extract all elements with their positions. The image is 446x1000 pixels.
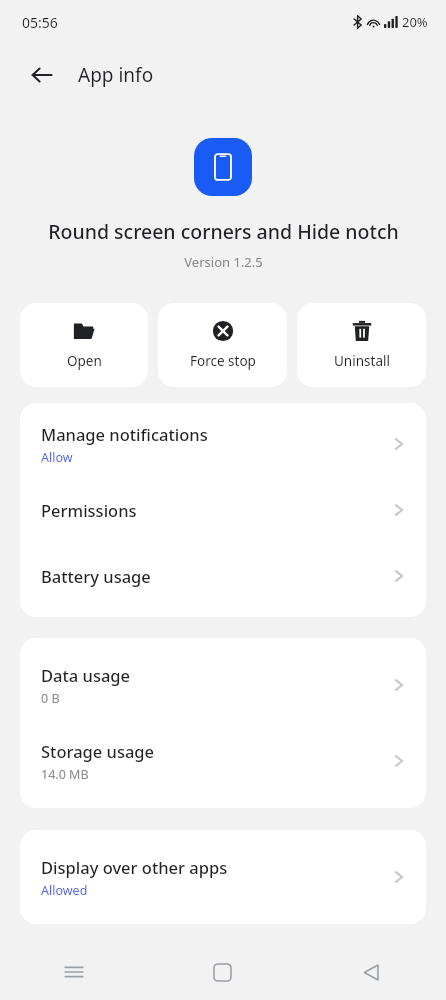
staticText: App info xyxy=(78,62,154,88)
staticText: Battery usage xyxy=(41,565,151,587)
button[interactable]: Force stop xyxy=(158,303,287,387)
button[interactable]: Open xyxy=(20,303,148,387)
staticText: 14.0 MB xyxy=(41,766,89,783)
staticText: Uninstall xyxy=(334,352,390,370)
staticText: Permissions xyxy=(41,499,137,521)
button[interactable]: Manage notifications xyxy=(20,411,426,477)
button[interactable]: Storage usage xyxy=(20,723,426,799)
button[interactable]: Back xyxy=(22,55,62,95)
staticText: Storage usage xyxy=(41,740,155,762)
staticText: Version 1.2.5 xyxy=(184,253,263,271)
button[interactable]: Recent apps xyxy=(0,944,148,1000)
button[interactable]: Battery usage xyxy=(20,543,426,609)
staticText: Force stop xyxy=(190,352,256,370)
staticText: Allow xyxy=(41,449,73,466)
button[interactable]: Back xyxy=(297,944,446,1000)
staticText: 20% xyxy=(402,13,428,31)
staticText: Manage notifications xyxy=(41,423,208,445)
staticText: 0 B xyxy=(41,690,60,707)
staticText: Display over other apps xyxy=(41,856,228,878)
staticText: Data usage xyxy=(41,664,131,686)
button[interactable]: Uninstall xyxy=(297,303,426,387)
staticText: Open xyxy=(67,352,102,370)
staticText: Allowed xyxy=(41,882,88,899)
button[interactable]: Home xyxy=(148,944,297,1000)
button[interactable]: Permissions xyxy=(20,477,426,543)
button[interactable]: Display over other apps xyxy=(20,839,426,915)
button[interactable]: Data usage xyxy=(20,647,426,723)
staticText: Round screen corners and Hide notch xyxy=(48,218,399,245)
staticText: 05:56 xyxy=(22,13,58,32)
